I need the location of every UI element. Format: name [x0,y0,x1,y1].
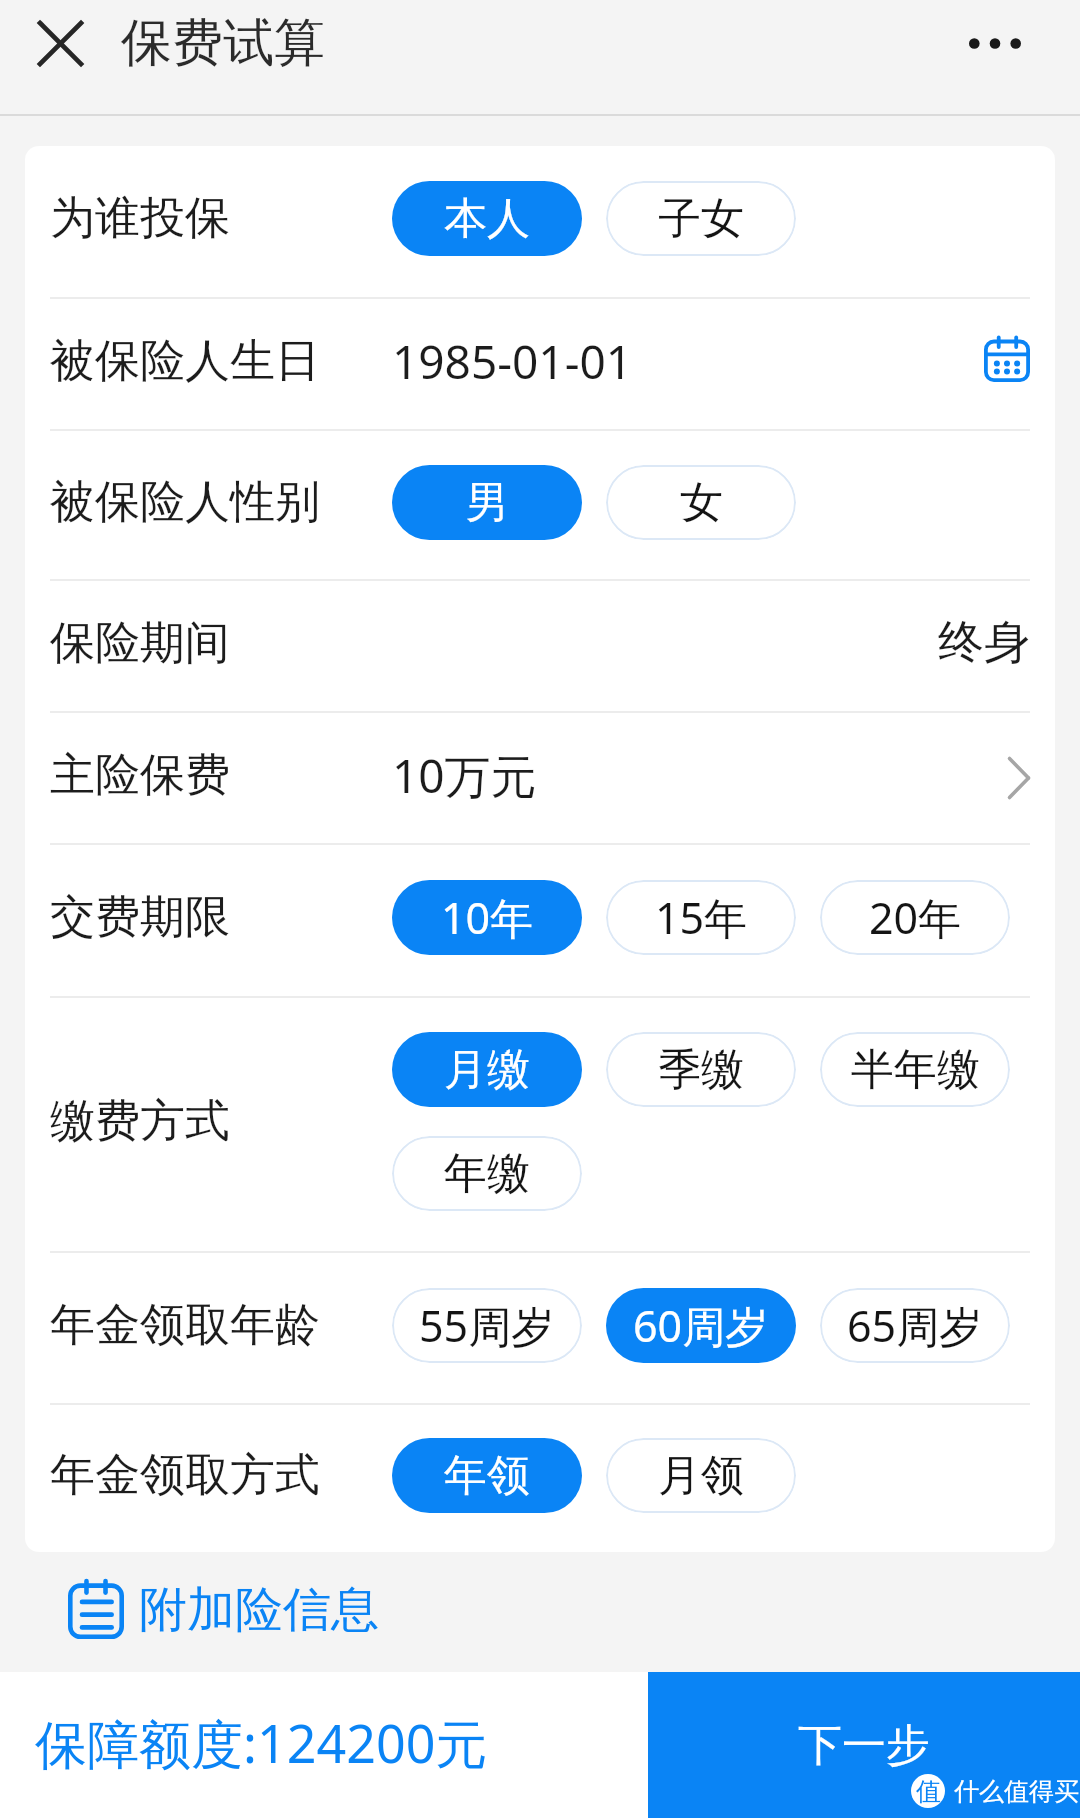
button[interactable]: 60周岁 [606,1288,796,1363]
staticText: 年缴 [444,1147,530,1201]
staticText: 值 [916,1776,941,1807]
staticText: 10万元 [392,744,537,807]
button[interactable]: 主险保费 [50,713,1030,837]
staticText: 年金领取方式 [50,1447,320,1504]
staticText: 月缴 [444,1043,530,1097]
button[interactable]: 被保险人生日 [50,299,1030,423]
other: Open main premium picker [1008,757,1030,799]
staticText: 月领 [658,1449,744,1503]
button[interactable]: Close [19,2,101,84]
staticText: 季缴 [658,1043,744,1097]
staticText: 20年 [869,888,962,947]
staticText: 主险保费 [50,747,230,804]
button[interactable]: 附加险信息 [68,1579,379,1641]
button[interactable]: More options [958,6,1032,80]
staticText: 65周岁 [847,1296,983,1355]
staticText: 附加险信息 [139,1580,379,1640]
button[interactable]: 季缴 [606,1032,796,1107]
staticText: 终身 [938,614,1030,672]
button[interactable]: 10年 [392,880,582,955]
button[interactable]: 女 [606,465,796,540]
button[interactable]: 15年 [606,880,796,955]
button[interactable]: 本人 [392,181,582,256]
staticText: 男 [466,476,509,530]
staticText: 1985-01-01 [392,330,633,393]
staticText: 年金领取年龄 [50,1297,320,1354]
staticText: 55周岁 [419,1296,555,1355]
button[interactable]: 子女 [606,181,796,256]
staticText: 半年缴 [851,1043,980,1097]
button[interactable]: 半年缴 [820,1032,1010,1107]
staticText: 本人 [444,192,530,246]
button[interactable]: 月领 [606,1438,796,1513]
staticText: 保费试算 [121,11,325,75]
button[interactable]: 20年 [820,880,1010,955]
staticText: 保险期间 [50,615,230,672]
staticText: 10年 [441,888,534,947]
staticText: 年领 [444,1449,530,1503]
staticText: 被保险人生日 [50,333,320,390]
button[interactable]: 男 [392,465,582,540]
staticText: 为谁投保 [50,190,230,247]
staticText: 保障额度:124200元 [35,1707,488,1778]
button[interactable]: 55周岁 [392,1288,582,1363]
button[interactable]: 下一步 [648,1672,1080,1818]
staticText: 什么值得买 [954,1776,1079,1807]
button[interactable]: 65周岁 [820,1288,1010,1363]
staticText: 缴费方式 [50,1093,230,1150]
staticText: 15年 [655,888,748,947]
staticText: 下一步 [798,1718,930,1773]
button[interactable]: 保障额度:124200元 [35,1707,488,1778]
button[interactable]: 年缴 [392,1136,582,1211]
staticText: 子女 [658,192,744,246]
button[interactable]: 月缴 [392,1032,582,1107]
button[interactable]: 年领 [392,1438,582,1513]
staticText: 60周岁 [633,1296,769,1355]
staticText: 交费期限 [50,889,230,946]
button[interactable]: Pick date [974,333,1030,389]
staticText: 女 [680,476,723,530]
staticText: 被保险人性别 [50,474,320,531]
